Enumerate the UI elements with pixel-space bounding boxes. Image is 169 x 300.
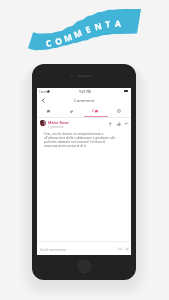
button[interactable]: Comments: [83, 105, 107, 117]
button[interactable]: Reply: [125, 122, 129, 126]
staticText: Carrier: [39, 90, 49, 94]
staticText: Cras, nia fo chiaisci ai comportamenta e…: [44, 132, 119, 148]
staticText: 2: [92, 109, 94, 113]
button[interactable]: Emoji: [118, 247, 122, 251]
staticText: Scrivi commento: [40, 247, 66, 251]
button[interactable]: Attachments: [60, 105, 83, 117]
button[interactable]: Back: [39, 96, 48, 105]
button[interactable]: Scrivi commento: [40, 242, 129, 255]
staticText: 1 giorno fa: [48, 125, 64, 129]
button[interactable]: Globe: [107, 105, 131, 117]
button[interactable]: Like: [117, 122, 121, 126]
staticText: Commenti: [74, 98, 95, 104]
button[interactable]: Report: [109, 122, 113, 126]
button[interactable]: Attach: [125, 247, 129, 251]
staticText: 9:41 PM: [79, 90, 92, 94]
staticText: Mario Rossi: [48, 120, 69, 125]
button[interactable]: Photos: [37, 105, 60, 117]
